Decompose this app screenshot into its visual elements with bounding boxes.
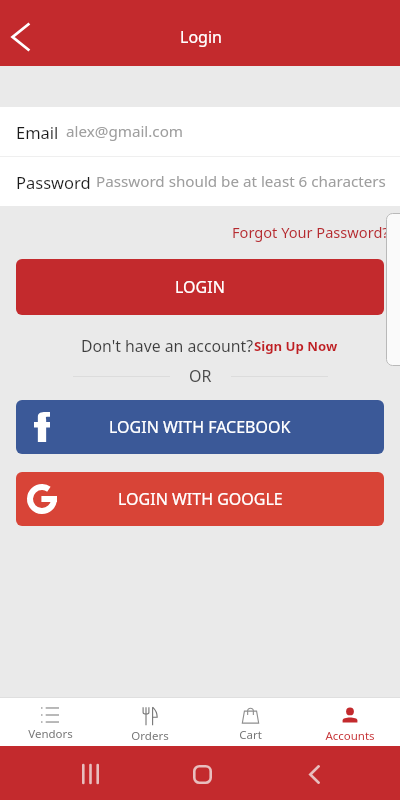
button[interactable]: Back: [288, 748, 340, 800]
button[interactable]: Back: [0, 13, 45, 61]
button[interactable]: LOGIN WITH GOOGLE: [16, 472, 384, 526]
staticText: LOGIN: [175, 276, 225, 298]
staticText: Accounts: [325, 728, 375, 742]
button[interactable]: Orders: [100, 698, 200, 746]
staticText: Cart: [239, 727, 262, 742]
button[interactable]: LOGIN: [16, 259, 384, 315]
staticText: Email: [16, 121, 59, 143]
button[interactable]: Recents: [64, 748, 116, 800]
button[interactable]: Sign Up Now: [254, 337, 338, 355]
staticText: Login: [180, 26, 222, 48]
button[interactable]: Cart: [200, 698, 300, 746]
button[interactable]: Vendors: [0, 698, 100, 746]
staticText: Don't have an account?: [81, 335, 254, 357]
staticText: Orders: [131, 728, 169, 742]
button[interactable]: Password: [0, 157, 400, 206]
button[interactable]: Home: [176, 748, 228, 800]
button[interactable]: Email: [0, 107, 400, 156]
staticText: OR: [189, 365, 212, 387]
staticText: LOGIN WITH FACEBOOK: [109, 416, 291, 438]
staticText: alex@gmail.com: [66, 121, 184, 142]
button[interactable]: Accounts: [300, 698, 400, 746]
button[interactable]: LOGIN WITH FACEBOOK: [16, 400, 384, 454]
staticText: Vendors: [28, 726, 73, 742]
staticText: LOGIN WITH GOOGLE: [118, 488, 283, 510]
staticText: Password: [16, 171, 91, 193]
staticText: Password should be at least 6 characters: [96, 171, 386, 192]
button[interactable]: Forgot Your Password?: [216, 218, 400, 246]
